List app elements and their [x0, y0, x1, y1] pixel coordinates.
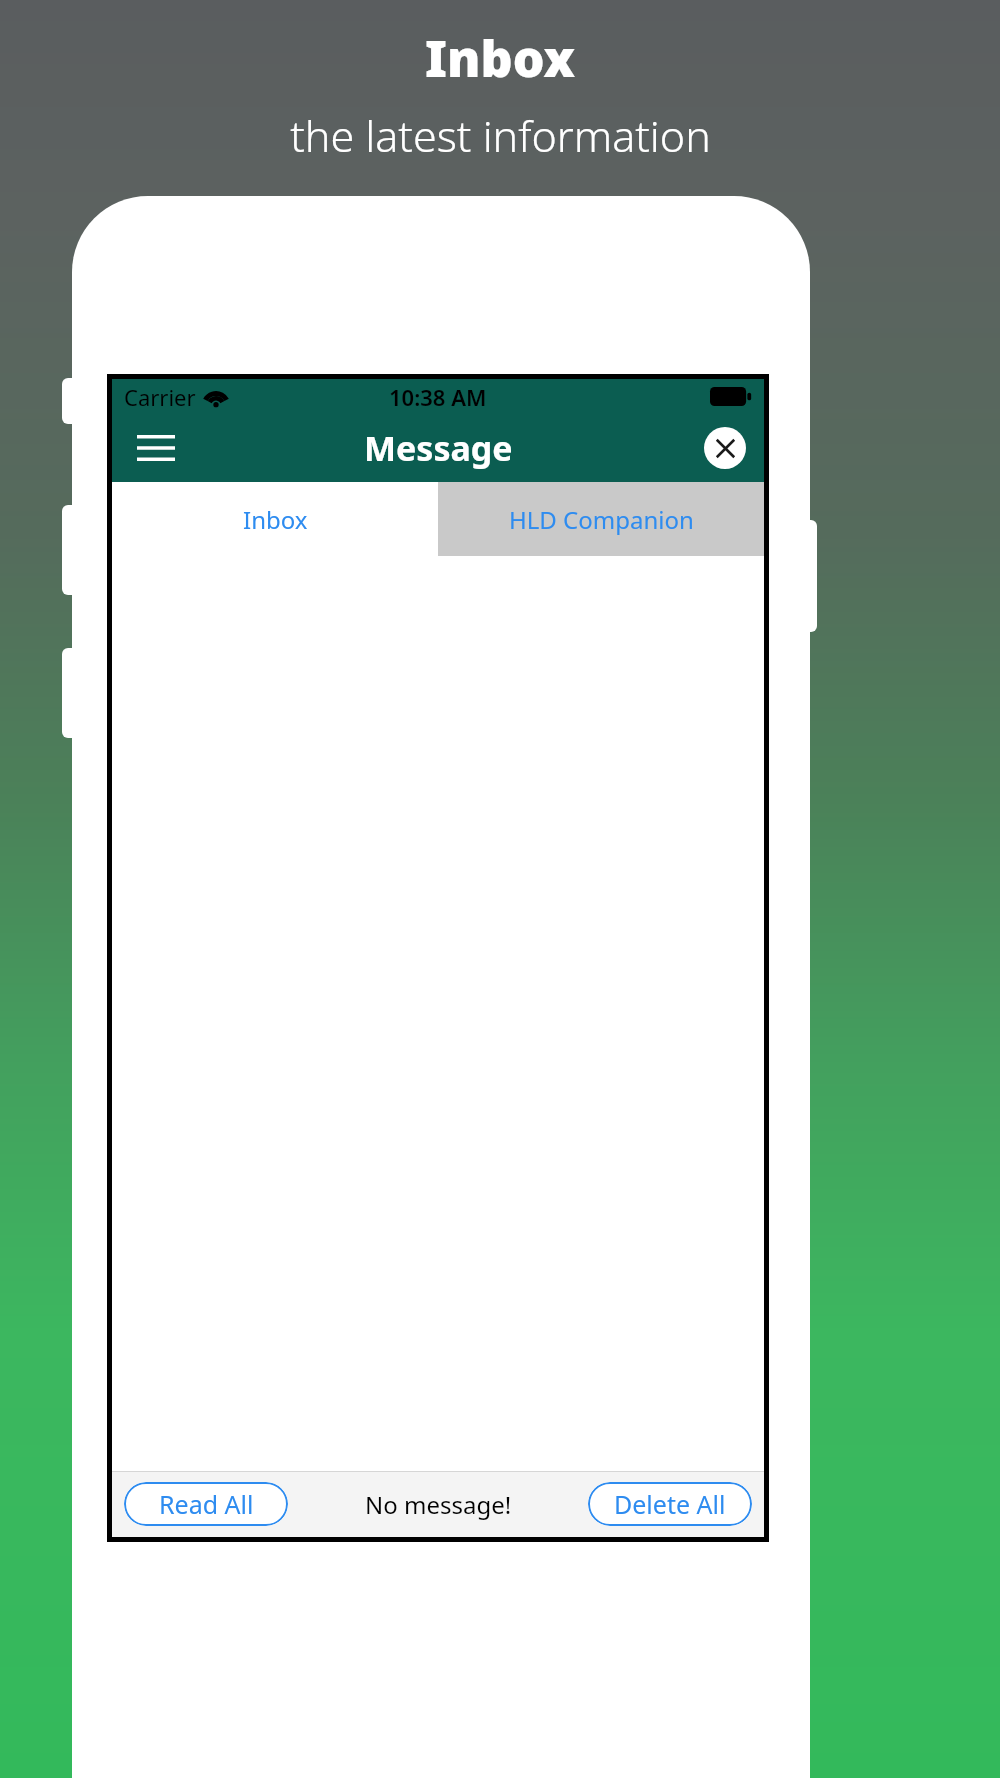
staticText: the latest information — [290, 106, 711, 165]
staticText: 10:38 AM — [389, 382, 487, 412]
button[interactable]: HLD Companion — [438, 482, 764, 556]
staticText: Inbox — [425, 24, 575, 92]
staticText: Carrier — [124, 382, 196, 412]
button[interactable]: Menu — [132, 424, 180, 472]
button[interactable]: Delete All — [588, 1482, 752, 1526]
staticText: Message — [364, 425, 513, 471]
staticText: Inbox — [243, 503, 308, 536]
staticText: No message! — [365, 1488, 512, 1521]
staticText: HLD Companion — [509, 503, 694, 536]
staticText: Delete All — [614, 1487, 726, 1521]
staticText: Read All — [159, 1487, 254, 1521]
button[interactable]: Close — [704, 427, 746, 469]
button[interactable]: Inbox — [112, 482, 438, 556]
button[interactable]: Read All — [124, 1482, 288, 1526]
